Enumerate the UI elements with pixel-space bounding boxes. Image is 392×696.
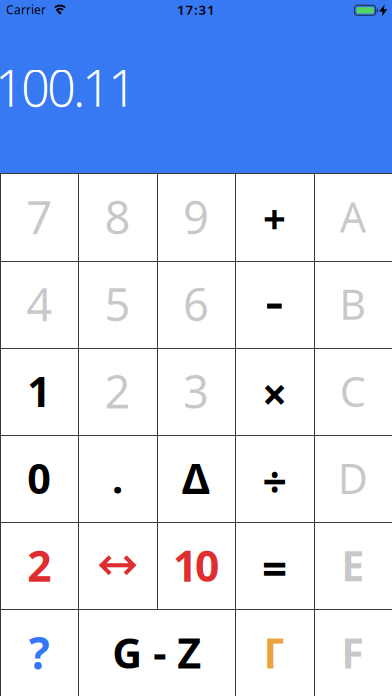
staticText: D [338, 451, 368, 505]
button[interactable]: Γ [235, 609, 314, 696]
staticText: 7 [26, 186, 52, 247]
button[interactable]: 7 [0, 173, 78, 260]
staticText: 10 [173, 537, 219, 594]
staticText: 0 [27, 451, 51, 505]
staticText: 17:31 [177, 1, 215, 18]
button[interactable]: + [235, 173, 314, 260]
staticText: 4 [26, 274, 52, 334]
button[interactable] [78, 522, 157, 609]
staticText: 8 [105, 186, 131, 247]
button[interactable]: Δ [157, 434, 235, 522]
button[interactable]: F [314, 609, 392, 696]
button[interactable]: 6 [157, 260, 235, 347]
staticText: ? [29, 623, 50, 682]
staticText: 3 [183, 361, 209, 421]
button[interactable]: 9 [157, 173, 235, 260]
button[interactable] [235, 260, 314, 347]
staticText: 1 [27, 363, 51, 418]
staticText: G - Z [112, 625, 201, 680]
staticText: Carrier [6, 1, 46, 17]
staticText: F [341, 625, 364, 680]
staticText: 9 [183, 186, 209, 247]
staticText: . [112, 451, 123, 505]
staticText: 2 [27, 537, 51, 594]
button[interactable]: B [314, 260, 392, 347]
staticText: × [262, 364, 287, 423]
button[interactable]: 2 [0, 522, 78, 609]
button[interactable]: C [314, 347, 392, 434]
staticText: ÷ [262, 453, 286, 509]
staticText: C [340, 363, 366, 418]
staticText: 100.11 [0, 53, 137, 121]
staticText: 2 [105, 361, 131, 421]
button[interactable]: 2 [78, 347, 157, 434]
button[interactable]: 4 [0, 260, 78, 347]
staticText: Δ [182, 451, 210, 505]
button[interactable]: ? [0, 609, 78, 696]
staticText: 5 [105, 274, 131, 334]
staticText: E [341, 538, 364, 593]
button[interactable]: 5 [78, 260, 157, 347]
button[interactable]: 3 [157, 347, 235, 434]
button[interactable]: A [314, 173, 392, 260]
button[interactable]: × [235, 347, 314, 434]
staticText: A [340, 189, 366, 244]
staticText: = [262, 538, 287, 597]
button[interactable]: 8 [78, 173, 157, 260]
button[interactable]: G - Z [78, 609, 235, 696]
button[interactable]: . [78, 434, 157, 522]
staticText: 6 [183, 274, 209, 334]
button[interactable]: 1 [0, 347, 78, 434]
staticText: Γ [263, 625, 285, 680]
button[interactable]: 10 [157, 522, 235, 609]
button[interactable]: E [314, 522, 392, 609]
button[interactable]: = [235, 522, 314, 609]
staticText: + [263, 191, 286, 244]
button[interactable]: ÷ [235, 434, 314, 522]
button[interactable]: D [314, 434, 392, 522]
button[interactable]: 0 [0, 434, 78, 522]
staticText: B [339, 276, 366, 331]
